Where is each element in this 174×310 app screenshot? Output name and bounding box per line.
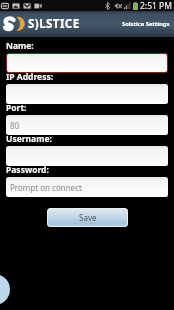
- staticText: 80: [10, 120, 20, 131]
- staticText: Prompt on connect: [10, 182, 82, 193]
- button[interactable]: Prompt on connect: [6, 177, 168, 197]
- staticText: S)LSTICE: [28, 16, 80, 32]
- other: Solstice logo: [3, 16, 25, 32]
- button[interactable]: [6, 84, 168, 104]
- staticText: 2:51 PM: [140, 0, 172, 11]
- button[interactable]: [7, 54, 167, 72]
- button[interactable]: [6, 146, 168, 166]
- staticText: Password:: [6, 164, 49, 176]
- button[interactable]: Save: [48, 209, 127, 226]
- staticText: IP Address:: [6, 71, 54, 83]
- button[interactable]: 80: [6, 115, 168, 135]
- staticText: Name:: [6, 40, 34, 52]
- staticText: Solstice Settings: [122, 20, 170, 28]
- button[interactable]: Handle: [0, 274, 10, 305]
- staticText: Port:: [6, 102, 27, 114]
- staticText: Username:: [6, 133, 52, 145]
- staticText: Save: [79, 212, 97, 223]
